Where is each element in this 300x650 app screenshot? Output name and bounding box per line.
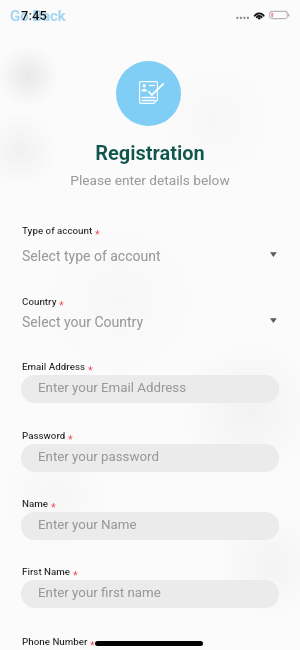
staticText: Please enter details below <box>0 172 300 188</box>
staticText: Registration <box>0 141 300 164</box>
staticText: Enter your password <box>38 449 159 465</box>
button[interactable] <box>10 242 290 272</box>
button[interactable] <box>10 308 290 338</box>
other: Mobile signal <box>236 16 249 20</box>
staticText: Enter your Email Address <box>38 380 187 396</box>
staticText: Select your Country <box>22 314 144 330</box>
staticText: * <box>88 364 93 377</box>
staticText: Name <box>22 498 49 509</box>
staticText: Password <box>22 430 66 441</box>
button[interactable]: Enter your Name <box>21 512 279 540</box>
button[interactable]: Enter your first name <box>21 580 279 608</box>
staticText: 7:45 <box>21 8 47 23</box>
staticText: Country <box>22 296 57 307</box>
button[interactable]: Go Back <box>10 7 66 25</box>
staticText: * <box>95 228 100 241</box>
staticText: * <box>73 569 78 582</box>
staticText: * <box>90 639 95 650</box>
staticText: First Name <box>22 566 71 577</box>
staticText: Email Address <box>22 361 86 372</box>
staticText: * <box>68 433 73 446</box>
other: Battery low <box>269 11 290 20</box>
staticText: Phone Number <box>22 636 88 647</box>
staticText: * <box>51 501 56 514</box>
staticText: Enter your Name <box>38 517 137 533</box>
staticText: Select type of account <box>22 248 161 264</box>
other: Wi-Fi <box>253 11 266 20</box>
button[interactable]: Enter your Email Address <box>21 375 279 403</box>
staticText: Type of account <box>22 225 93 236</box>
staticText: * <box>59 299 64 312</box>
button[interactable]: Enter your password <box>21 444 279 472</box>
staticText: Enter your first name <box>38 585 161 601</box>
